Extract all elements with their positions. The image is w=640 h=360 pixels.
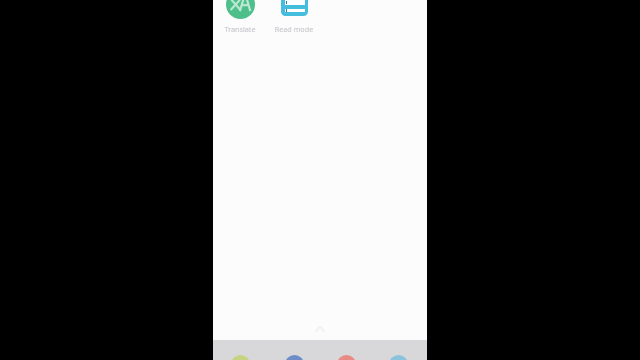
- button[interactable]: Phone: [231, 355, 250, 360]
- button[interactable]: Read mode: [267, 0, 321, 33]
- button[interactable]: Mail: [337, 355, 356, 360]
- button[interactable]: Translate: [213, 0, 267, 33]
- staticText: Read mode: [267, 24, 321, 34]
- button[interactable]: Browser: [285, 355, 304, 360]
- staticText: Translate: [213, 24, 267, 34]
- button[interactable]: Messages: [389, 355, 408, 360]
